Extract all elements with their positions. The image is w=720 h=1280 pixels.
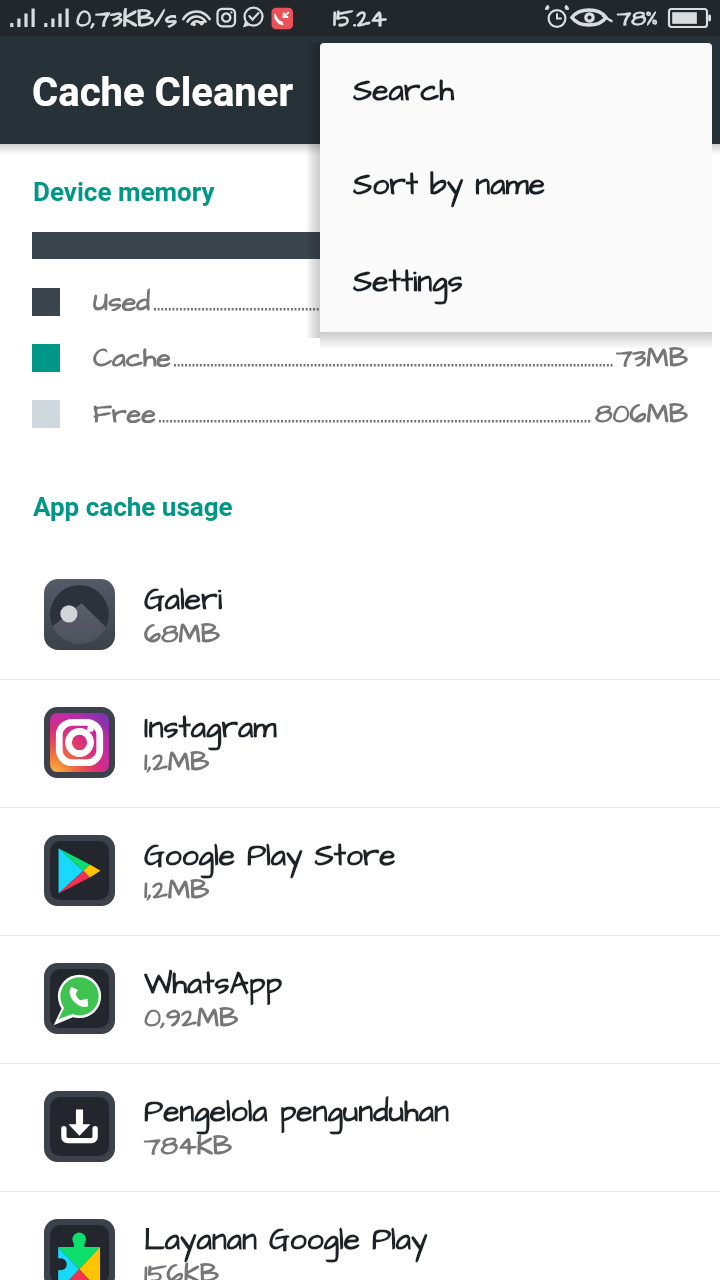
staticText: Device memory [33, 177, 215, 207]
staticText: 1,2MB [144, 871, 210, 909]
staticText: Galeri [144, 579, 223, 621]
button[interactable]: Settings [320, 235, 712, 331]
staticText: App cache usage [33, 492, 233, 522]
button[interactable]: Instagram [0, 680, 720, 808]
button[interactable]: WhatsApp [0, 936, 720, 1064]
button[interactable]: Galeri [0, 552, 720, 680]
button[interactable]: Layanan Google Play [0, 1192, 720, 1280]
staticText: 15.24 [333, 2, 387, 35]
staticText: 78% [617, 2, 658, 34]
button[interactable]: Google Play Store [0, 808, 720, 936]
staticText: WhatsApp [144, 963, 283, 1005]
staticText: 1,2MB [144, 743, 210, 781]
staticText: 73MB [616, 339, 688, 367]
staticText: Instagram [144, 707, 277, 749]
staticText: 156KB [144, 1255, 220, 1280]
staticText: Google Play Store [144, 835, 396, 877]
staticText: 0,73KB/s [76, 2, 177, 35]
staticText: 784KB [144, 1127, 233, 1165]
staticText: 0,92MB [144, 999, 239, 1037]
button[interactable]: Search [320, 43, 712, 139]
staticText: Sort by name [353, 164, 546, 206]
staticText: Free [93, 395, 156, 423]
staticText: Pengelola pengunduhan [144, 1091, 450, 1133]
staticText: Settings [353, 261, 463, 303]
staticText: Search [353, 70, 455, 112]
staticText: 68MB [144, 615, 220, 653]
staticText: 806MB [595, 395, 688, 423]
staticText: Cache Cleaner [32, 69, 293, 116]
button[interactable]: Sort by name [320, 139, 712, 235]
staticText: Layanan Google Play [144, 1219, 428, 1261]
staticText: Cache [93, 339, 171, 367]
button[interactable]: Pengelola pengunduhan [0, 1064, 720, 1192]
staticText: Used [93, 283, 151, 311]
